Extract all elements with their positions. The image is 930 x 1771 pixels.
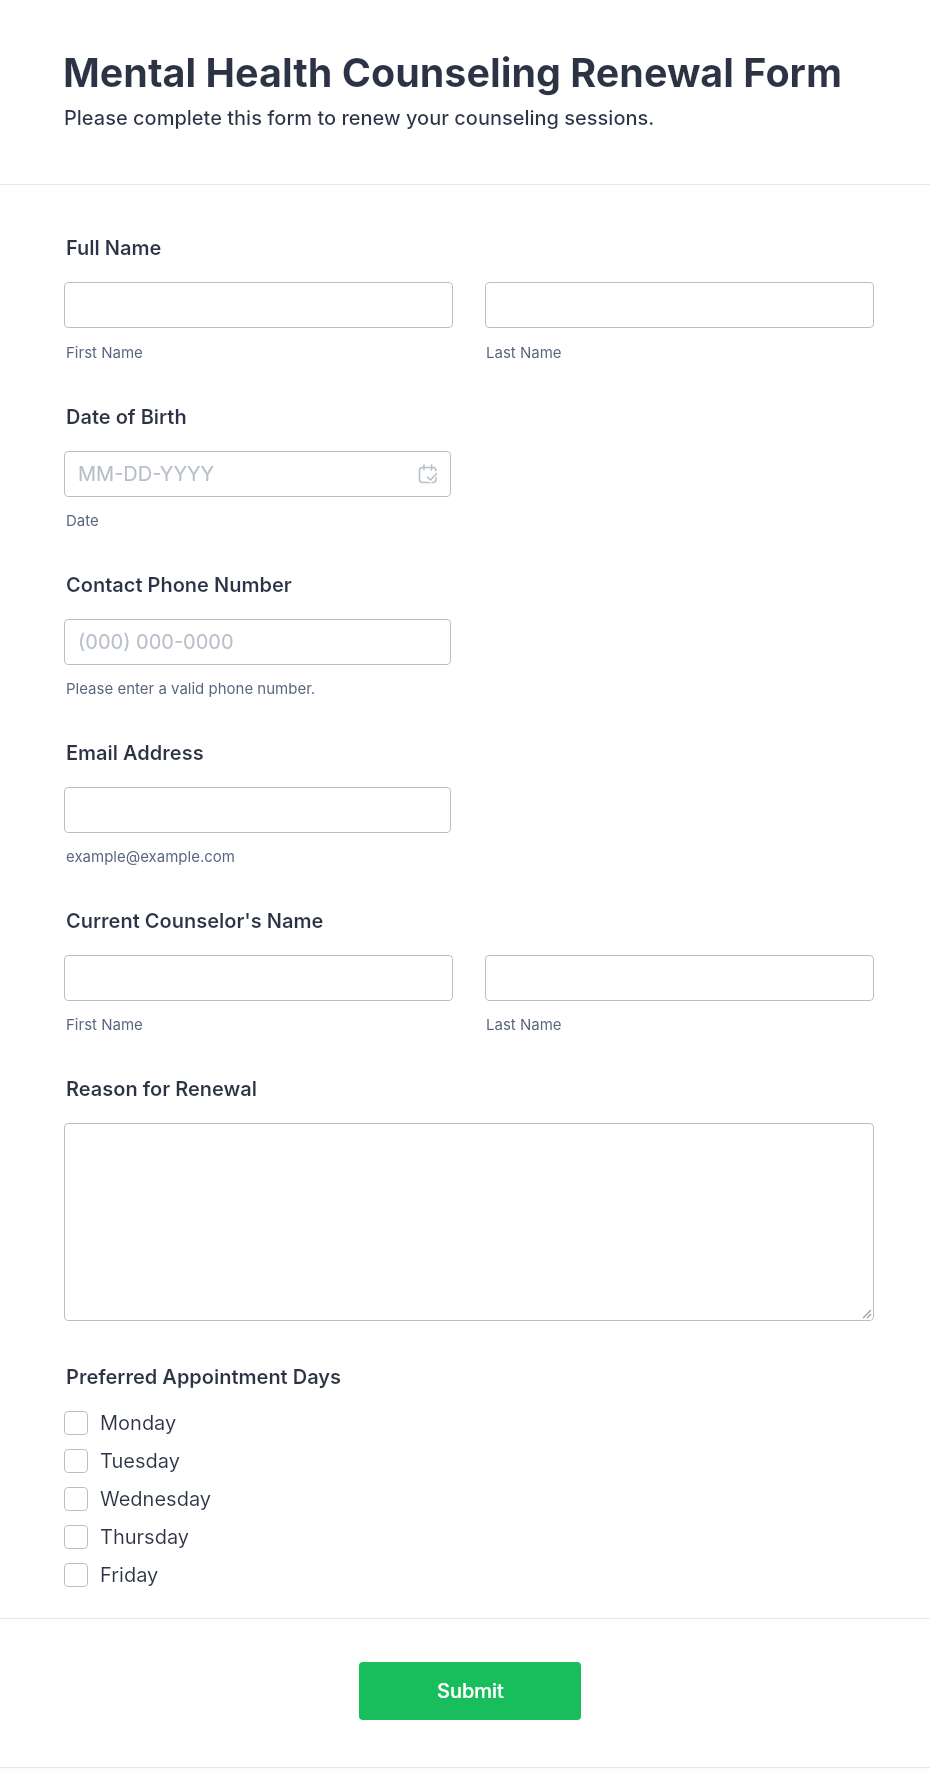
staticText: Last Name — [486, 343, 562, 361]
button[interactable] — [64, 1411, 88, 1435]
staticText: First Name — [66, 1015, 143, 1033]
staticText: Contact Phone Number — [66, 573, 292, 597]
button[interactable] — [64, 1123, 874, 1321]
button[interactable]: (000) 000-0000 — [64, 619, 451, 665]
button[interactable] — [64, 1449, 88, 1473]
staticText: Tuesday — [100, 1449, 180, 1473]
staticText: Please complete this form to renew your … — [64, 106, 655, 130]
button[interactable] — [64, 282, 453, 328]
staticText: Date — [66, 511, 99, 529]
staticText: Preferred Appointment Days — [66, 1365, 342, 1389]
staticText: Thursday — [100, 1525, 190, 1549]
staticText: Date of Birth — [66, 405, 187, 429]
button[interactable] — [64, 787, 451, 833]
staticText: Friday — [100, 1563, 159, 1587]
button[interactable]: MM-DD-YYYY — [64, 451, 451, 497]
staticText: Reason for Renewal — [66, 1077, 258, 1101]
staticText: Last Name — [486, 1015, 562, 1033]
staticText: example@example.com — [66, 847, 235, 865]
staticText: MM-DD-YYYY — [78, 462, 215, 486]
staticText: Mental Health Counseling Renewal Form — [63, 49, 843, 97]
staticText: Monday — [100, 1411, 177, 1435]
button[interactable] — [485, 955, 874, 1001]
button[interactable]: Submit — [359, 1662, 581, 1720]
staticText: (000) 000-0000 — [78, 630, 234, 654]
button[interactable] — [64, 1563, 88, 1587]
staticText: Email Address — [66, 741, 204, 765]
staticText: Current Counselor's Name — [66, 909, 324, 933]
staticText: Wednesday — [100, 1487, 212, 1511]
staticText: Full Name — [66, 236, 162, 260]
staticText: Submit — [437, 1679, 504, 1703]
button[interactable] — [64, 1525, 88, 1549]
button[interactable] — [64, 955, 453, 1001]
staticText: First Name — [66, 343, 143, 361]
button[interactable] — [64, 1487, 88, 1511]
staticText: Please enter a valid phone number. — [66, 679, 316, 697]
button[interactable] — [485, 282, 874, 328]
